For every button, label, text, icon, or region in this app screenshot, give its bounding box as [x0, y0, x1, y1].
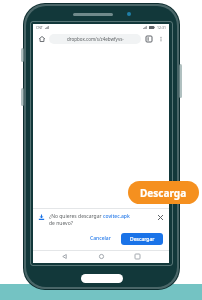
button[interactable]: Close [156, 213, 165, 222]
button[interactable]: dropbox.com/s/z4ebwfyvs- [49, 34, 141, 44]
button[interactable]: Cancelar [84, 232, 117, 245]
button[interactable]: Descarga [128, 181, 199, 204]
button[interactable]: Tabs [144, 34, 154, 44]
button[interactable]: Back [59, 251, 70, 262]
button[interactable]: Recent apps [132, 251, 143, 262]
staticText: Descargar [130, 236, 155, 243]
button[interactable]: Home [96, 251, 107, 262]
staticText: covitec.apk [103, 213, 130, 220]
staticText: Descarga [140, 186, 187, 200]
button[interactable]: Descargar [121, 233, 163, 245]
staticText: dropbox.com/s/z4ebwfyvs- [67, 36, 124, 42]
button[interactable]: Home [36, 33, 47, 44]
staticText: CNT [36, 25, 43, 30]
staticText: Cancelar [90, 235, 111, 242]
button[interactable]: More options [156, 34, 166, 44]
staticText: ¿No quieres descargar [49, 213, 103, 220]
staticText: de nuevo? [49, 220, 73, 227]
staticText: 12:31 [157, 25, 166, 30]
